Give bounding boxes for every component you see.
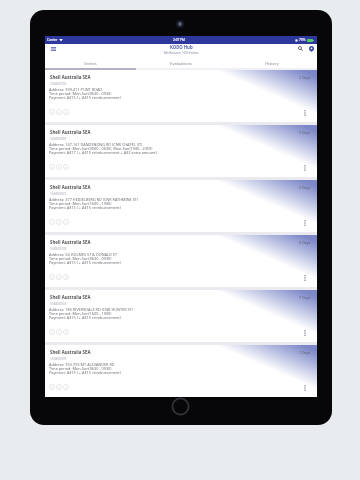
staticText: Time period: Mon-Sun(1600 - 1900) (49, 201, 112, 206)
staticText: 6 Days (299, 240, 311, 245)
button[interactable]: Invites (45, 58, 135, 68)
staticText: 168400923 (50, 302, 67, 306)
staticText: 5 Days (299, 130, 311, 135)
button[interactable]: Shell Australia SEA (45, 70, 317, 122)
button[interactable]: Status step (48, 383, 55, 390)
staticText: Payment: A$15 ( + A$15 reimbursement) (49, 260, 121, 265)
button[interactable]: Show map location (306, 43, 317, 54)
staticText: Shell Australia SEA (50, 294, 91, 300)
button[interactable]: Status step (62, 163, 69, 170)
staticText: Time period: Mon-Sun(0630 - 0930) (49, 256, 112, 261)
button[interactable]: More options (300, 163, 310, 173)
staticText: 2 Days (299, 75, 311, 80)
button[interactable]: More options (300, 273, 310, 283)
staticText: 2:07 PM (173, 38, 185, 42)
staticText: Shell Australia SEA (50, 239, 91, 245)
button[interactable]: Shell Australia SEA (45, 235, 317, 287)
button[interactable]: More options (300, 328, 310, 338)
button[interactable]: Status step (55, 328, 62, 335)
button[interactable]: Shell Australia SEA (45, 125, 317, 177)
staticText: Carrier (47, 38, 58, 42)
button[interactable]: Status step (55, 108, 62, 115)
staticText: 7 Days (299, 350, 311, 355)
staticText: Payment: A$15 ( + A$15 reimbursement) (49, 370, 121, 375)
staticText: 168400739 (50, 247, 67, 251)
staticText: Payment: A$15 ( + A$15 reimbursement) (49, 315, 121, 320)
staticText: History (265, 61, 279, 66)
staticText: Melbourne 100 Invites (164, 50, 199, 54)
staticText: Payment: A$15 ( + A$15 reimbursement) (49, 205, 121, 210)
staticText: Payment: A$15 ( + A$15 reimbursement) (49, 95, 121, 100)
staticText: Address: 54 HOLMES ST & DONALD ST (49, 252, 118, 257)
button[interactable]: Status step (55, 273, 62, 280)
button[interactable]: Status step (62, 383, 69, 390)
staticText: Evaluations (170, 61, 192, 66)
button[interactable]: Status step (55, 163, 62, 170)
button[interactable]: Status step (62, 328, 69, 335)
staticText: 168400597 (50, 357, 67, 361)
button[interactable]: Shell Australia SEA (45, 290, 317, 342)
staticText: Address: 185 RIVERSDALE RD (CNR HUNTER S… (49, 307, 133, 312)
staticText: 168400021 (50, 192, 67, 196)
button[interactable]: Search (295, 43, 306, 54)
staticText: Time period: Mon-Sun(0000 - 0630), Mon-S… (49, 146, 153, 151)
staticText: Time period: Mon-Sun(0630 - 0930) (49, 366, 112, 371)
button[interactable]: Status step (48, 108, 55, 115)
staticText: Address: 147-161 DANDENONG RD (CNR CHAPE… (49, 142, 143, 147)
button[interactable]: Status step (62, 273, 69, 280)
staticText: 7 Days (299, 295, 311, 300)
button[interactable]: More options (300, 383, 310, 393)
staticText: Time period: Mon-Sun(0630 - 0930) (49, 91, 112, 96)
staticText: Invites (84, 61, 97, 66)
button[interactable]: History (226, 58, 317, 68)
button[interactable]: Status step (62, 218, 69, 225)
button[interactable]: Evaluations (135, 58, 226, 68)
staticText: KODO Hub (170, 44, 193, 50)
button[interactable]: Status step (48, 218, 55, 225)
button[interactable]: Open navigation menu (47, 43, 59, 55)
button[interactable]: More options (300, 218, 310, 228)
staticText: Address: 377 HEIDELBERG RD (CNR RATHMINE… (49, 197, 139, 202)
button[interactable]: Status step (55, 383, 62, 390)
staticText: 168400007 (50, 137, 67, 141)
button[interactable]: Status step (48, 273, 55, 280)
staticText: Shell Australia SEA (50, 74, 91, 80)
staticText: 79% (299, 38, 306, 42)
staticText: Address: 399-411 PUNT ROAD (49, 87, 103, 92)
button[interactable]: Status step (48, 328, 55, 335)
button[interactable]: Shell Australia SEA (45, 345, 317, 397)
staticText: 168400723 (50, 82, 67, 86)
staticText: Shell Australia SEA (50, 184, 91, 190)
staticText: Time period: Mon-Sun(1600 - 1900) (49, 311, 112, 316)
staticText: Shell Australia SEA (50, 129, 91, 135)
staticText: 5 Days (299, 185, 311, 190)
staticText: Address: 763-795 MT ALEXANDER RD (49, 362, 115, 367)
staticText: Shell Australia SEA (50, 349, 91, 355)
button[interactable]: More options (300, 108, 310, 118)
button[interactable]: Shell Australia SEA (45, 180, 317, 232)
button[interactable]: Status step (48, 163, 55, 170)
button[interactable]: Status step (55, 218, 62, 225)
button[interactable]: Status step (62, 108, 69, 115)
staticText: Payment: A$17 ( + A$15 reimbursement + A… (49, 150, 157, 155)
